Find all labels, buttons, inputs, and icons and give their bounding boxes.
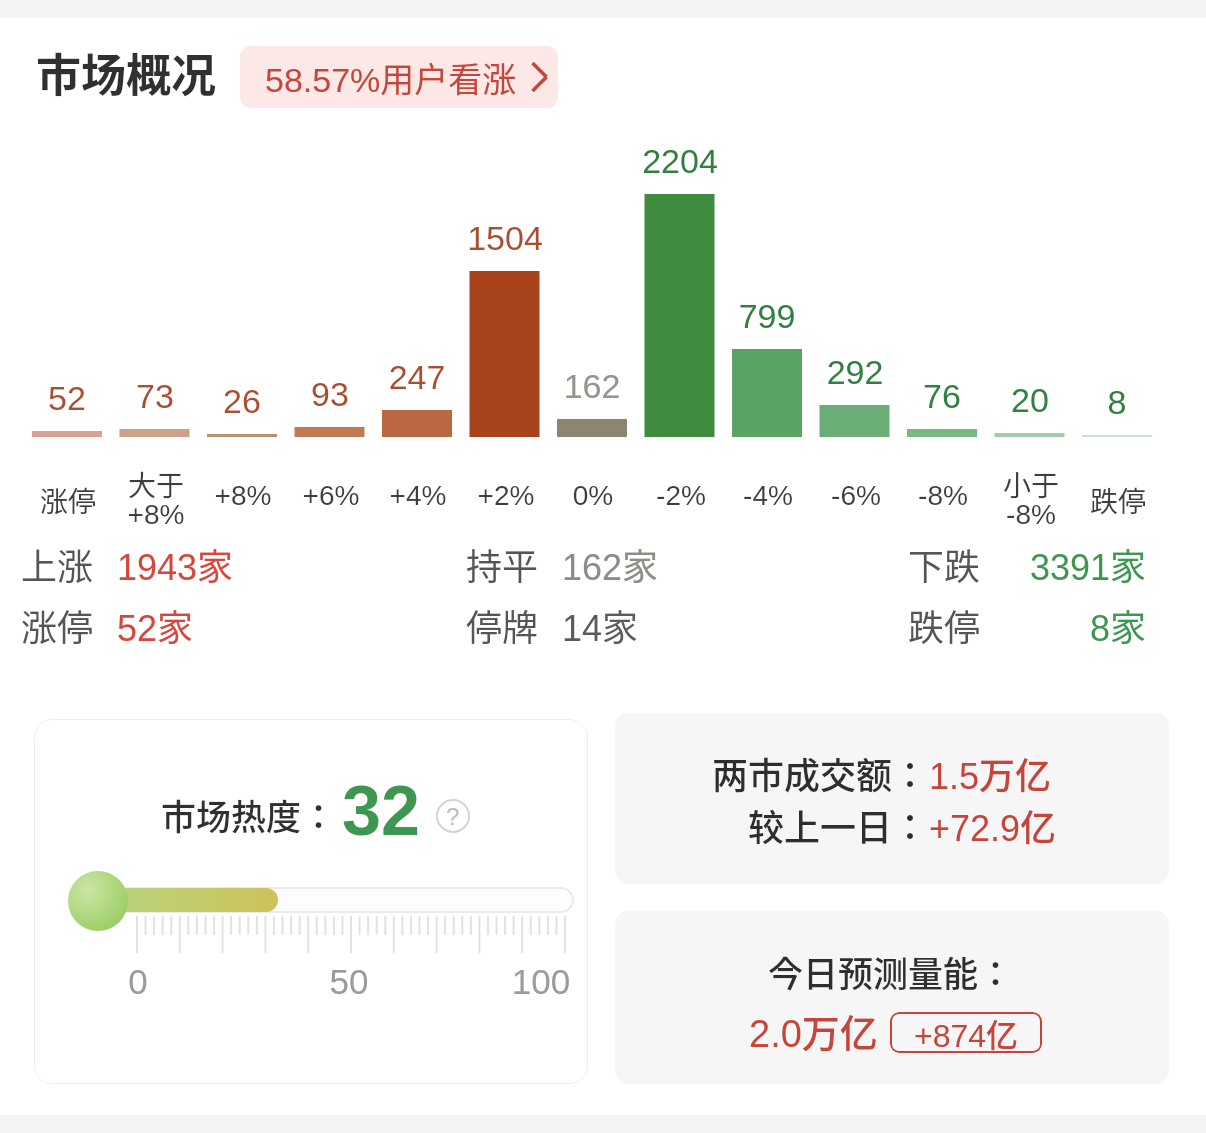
staticText: 今日预测量能： bbox=[768, 946, 1004, 997]
staticText: 涨停 bbox=[21, 599, 94, 651]
staticText: 跌停 bbox=[908, 599, 981, 651]
staticText: 162 bbox=[532, 367, 652, 405]
button[interactable]: 下跌 bbox=[908, 538, 1147, 590]
staticText: 799 bbox=[707, 297, 827, 335]
staticText: 涨停 bbox=[8, 480, 128, 521]
staticText: -4% bbox=[708, 480, 828, 511]
staticText: +72.9亿 bbox=[929, 799, 1057, 851]
button[interactable]: 两市成交额： bbox=[615, 713, 1169, 884]
staticText: 1504 bbox=[445, 219, 565, 257]
staticText: ? bbox=[446, 803, 460, 830]
button[interactable]: 涨停 bbox=[21, 599, 194, 651]
staticText: 0% bbox=[533, 480, 653, 511]
staticText: 下跌 bbox=[908, 538, 981, 590]
other: 市场热度说明 bbox=[436, 799, 470, 833]
button[interactable]: 跌停 bbox=[908, 599, 1147, 651]
staticText: 26 bbox=[182, 382, 302, 420]
staticText: +8% bbox=[183, 480, 303, 511]
staticText: 50 bbox=[289, 962, 409, 1001]
staticText: 两市成交额： bbox=[711, 747, 918, 799]
staticText: 2.0万亿 bbox=[749, 1003, 878, 1058]
staticText: 52家 bbox=[117, 599, 194, 651]
staticText: 100 bbox=[481, 962, 588, 1001]
staticText: 93 bbox=[270, 375, 390, 413]
staticText: -8% bbox=[883, 480, 1003, 511]
staticText: +2% bbox=[446, 480, 566, 511]
staticText: 市场热度： bbox=[161, 789, 327, 840]
staticText: 2204 bbox=[620, 142, 740, 180]
staticText: 持平 bbox=[466, 538, 539, 590]
staticText: +6% bbox=[271, 480, 391, 511]
staticText: -2% bbox=[621, 480, 741, 511]
staticText: 247 bbox=[357, 358, 477, 396]
staticText: 上涨 bbox=[21, 538, 94, 590]
staticText: 1.5万亿 bbox=[929, 747, 1052, 799]
staticText: 停牌 bbox=[466, 599, 539, 651]
staticText: 20 bbox=[970, 381, 1090, 419]
staticText: 32 bbox=[342, 772, 420, 850]
staticText: 0 bbox=[78, 962, 198, 1001]
staticText: 大于 bbox=[96, 464, 216, 505]
staticText: 较上一日： bbox=[747, 799, 918, 851]
staticText: 52 bbox=[7, 379, 127, 417]
staticText: 8家 bbox=[1090, 599, 1147, 651]
staticText: 58.57%用户看涨 bbox=[265, 53, 517, 102]
staticText: 76 bbox=[882, 377, 1002, 415]
staticText: +8% bbox=[96, 499, 216, 530]
button[interactable]: 58.57%用户看涨 bbox=[240, 46, 558, 108]
staticText: -6% bbox=[796, 480, 916, 511]
other: 查看用户看涨详情 bbox=[531, 61, 548, 93]
staticText: -8% bbox=[971, 499, 1091, 530]
staticText: 跌停 bbox=[1058, 480, 1178, 521]
button[interactable]: 市场热度： bbox=[34, 719, 588, 1084]
button[interactable]: 今日预测量能： bbox=[615, 911, 1169, 1084]
button[interactable]: 上涨 bbox=[21, 538, 234, 590]
button[interactable]: 持平 bbox=[466, 538, 659, 590]
staticText: 162家 bbox=[562, 538, 659, 590]
staticText: +874亿 bbox=[914, 1012, 1019, 1051]
staticText: 8 bbox=[1057, 383, 1177, 421]
staticText: +4% bbox=[358, 480, 478, 511]
staticText: 292 bbox=[795, 353, 915, 391]
staticText: 小于 bbox=[971, 464, 1091, 505]
staticText: 1943家 bbox=[117, 538, 234, 590]
staticText: 市场概况 bbox=[36, 40, 217, 105]
staticText: 73 bbox=[95, 377, 215, 415]
staticText: 3391家 bbox=[1030, 538, 1147, 590]
button[interactable]: 停牌 bbox=[466, 599, 639, 651]
staticText: 14家 bbox=[562, 599, 639, 651]
